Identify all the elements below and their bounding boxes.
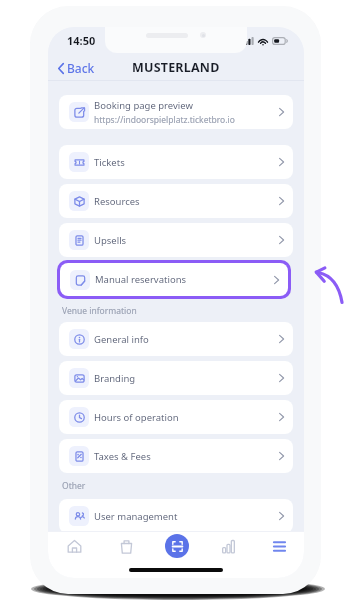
staticText: User management xyxy=(94,510,178,523)
button[interactable]: Tickets xyxy=(59,145,293,179)
button[interactable]: Scan xyxy=(165,534,189,558)
staticText: https://indoorspielplatz.ticketbro.io xyxy=(94,114,235,126)
staticText: Hours of operation xyxy=(94,411,179,424)
staticText: Branding xyxy=(94,372,136,385)
button[interactable]: Booking page preview xyxy=(59,95,293,129)
button[interactable]: Upsells xyxy=(59,223,293,257)
button[interactable]: Hours of operation xyxy=(59,400,293,434)
staticText: Booking page preview xyxy=(94,99,193,112)
staticText: Tickets xyxy=(94,156,125,169)
staticText: Back xyxy=(67,60,95,76)
staticText: Upsells xyxy=(94,234,127,247)
staticText: Resources xyxy=(94,195,140,208)
button[interactable]: Orders xyxy=(113,533,139,559)
button[interactable]: Analytics xyxy=(215,533,241,559)
button[interactable]: Menu xyxy=(266,533,292,559)
staticText: Venue information xyxy=(62,305,293,317)
button[interactable]: Branding xyxy=(59,361,293,395)
button[interactable]: Resources xyxy=(59,184,293,218)
button[interactable]: Manual reservations xyxy=(60,263,288,296)
staticText: Other xyxy=(62,480,293,492)
button[interactable]: Home xyxy=(61,533,87,559)
button[interactable]: Taxes & Fees xyxy=(59,439,293,473)
staticText: Manual reservations xyxy=(95,273,187,286)
staticText: General info xyxy=(94,333,149,346)
staticText: Taxes & Fees xyxy=(94,450,151,463)
button[interactable]: User management xyxy=(59,499,293,533)
staticText: MUSTERLAND xyxy=(132,59,220,76)
staticText: 14:50 xyxy=(67,33,96,48)
button[interactable]: General info xyxy=(59,322,293,356)
button[interactable]: Back xyxy=(55,57,98,79)
